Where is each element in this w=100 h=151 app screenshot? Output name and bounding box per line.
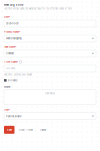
staticText: Contact [6,52,14,55]
button[interactable]: Cancel [37,126,48,134]
staticText: Notes [4,85,10,88]
staticText: 2025-05-20 [6,22,19,25]
button[interactable]: Save [4,126,14,134]
staticText: Add notes... [44,92,57,95]
staticText: Cancel [39,128,46,131]
staticText: Add time, until one hour behind [4,74,32,76]
staticText: HH:MM [6,67,15,70]
staticText: Web Designing [6,37,21,40]
staticText: Start Timer [19,128,33,131]
staticText: Time Spent* [4,60,18,63]
staticText: New Log Entry [4,3,23,6]
staticText: Project Name* [4,30,20,33]
staticText: Date* [4,15,10,18]
staticText: Task Name* [4,45,16,48]
staticText: Save [7,128,12,131]
button[interactable]: Start Timer [17,126,35,134]
staticText: User* [4,108,10,111]
staticText: Billable [8,79,17,82]
staticText: Log time entries using the allocated tag… [4,8,72,10]
staticText: Patrick Boyle [6,115,21,118]
